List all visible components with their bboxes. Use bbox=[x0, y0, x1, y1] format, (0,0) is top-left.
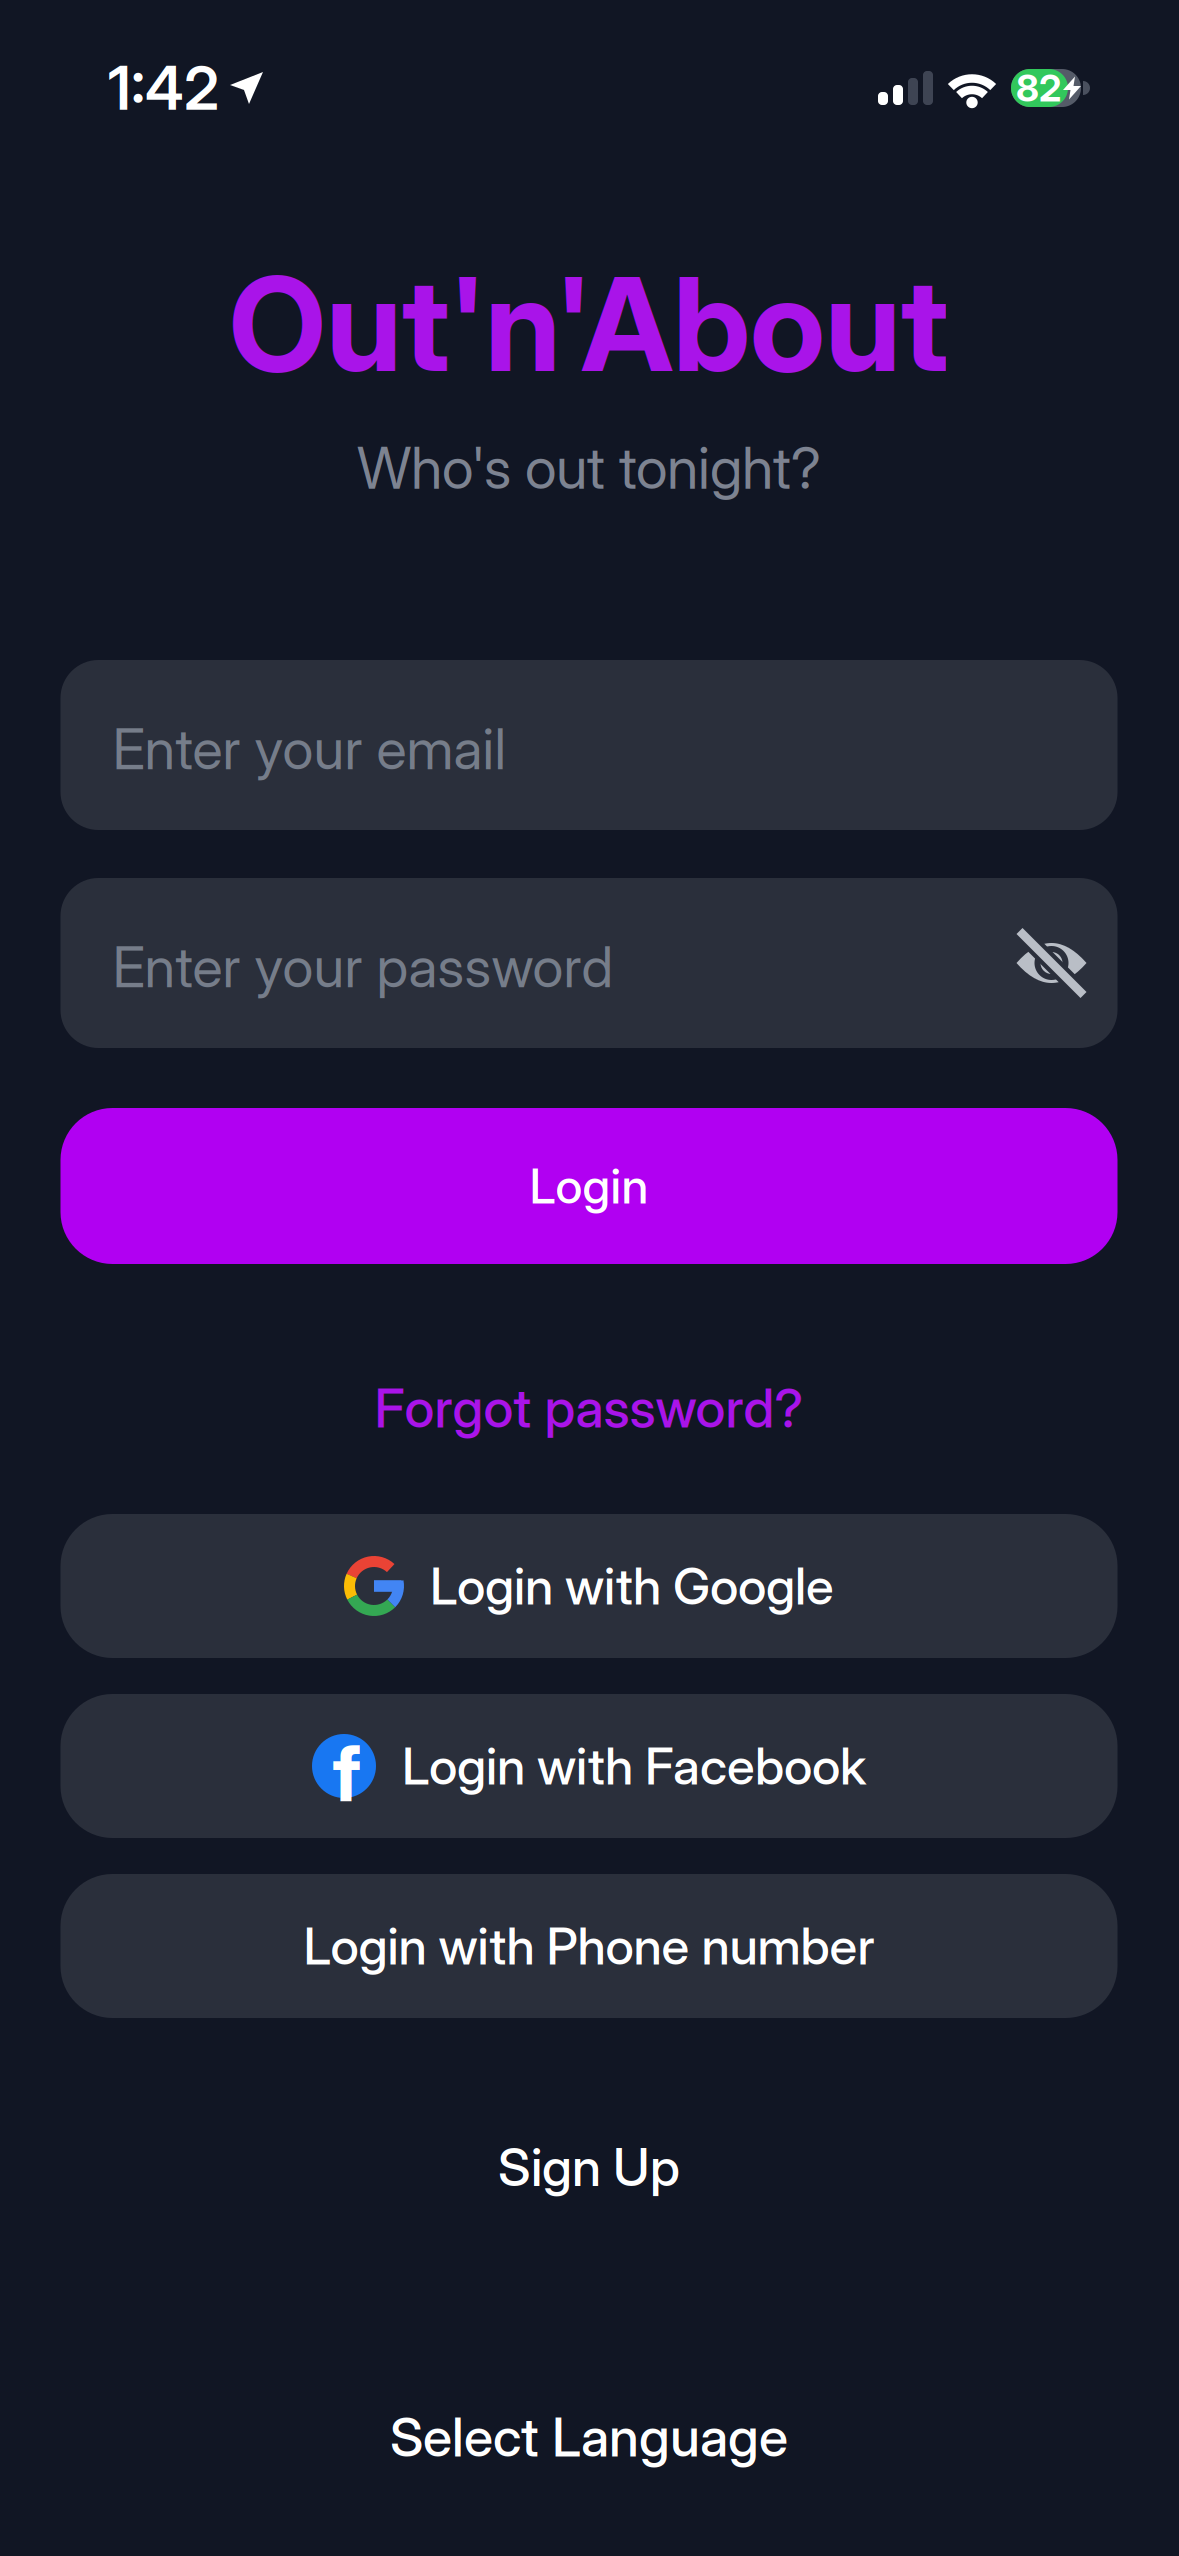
staticText: Who's out tonight? bbox=[357, 434, 821, 502]
staticText: Enter your password bbox=[112, 934, 613, 1000]
staticText: Enter your email bbox=[112, 716, 506, 782]
staticText: Login bbox=[529, 1158, 648, 1214]
staticText: Out'n'About bbox=[229, 248, 949, 400]
button[interactable]: Select Language bbox=[390, 2405, 788, 2468]
staticText: Login with Phone number bbox=[303, 1916, 874, 1976]
staticText: f bbox=[332, 1727, 361, 1819]
button[interactable]: Sign Up bbox=[498, 2136, 680, 2198]
button[interactable]: Login with Google bbox=[60, 1514, 1117, 1658]
secureTextField[interactable]: Enter your password bbox=[60, 878, 1117, 1048]
button[interactable]: f bbox=[60, 1694, 1117, 1838]
staticText: 82 bbox=[1016, 66, 1061, 110]
staticText: Login with Google bbox=[430, 1556, 834, 1616]
button[interactable]: Login with Phone number bbox=[60, 1874, 1117, 2018]
staticText: Forgot password? bbox=[374, 1376, 803, 1439]
button[interactable]: Show password bbox=[1015, 927, 1087, 999]
button[interactable]: Forgot password? bbox=[374, 1376, 803, 1439]
staticText: Select Language bbox=[390, 2405, 788, 2468]
button[interactable]: Login bbox=[60, 1108, 1117, 1264]
staticText: Login with Facebook bbox=[402, 1736, 866, 1796]
staticText: Sign Up bbox=[498, 2136, 680, 2198]
staticText: 1:42 bbox=[108, 53, 219, 123]
textField[interactable]: Enter your email bbox=[60, 660, 1117, 830]
